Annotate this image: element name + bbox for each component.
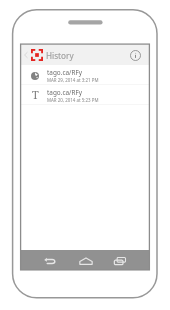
staticText: MAR 29, 2014 at 3:21 PM [47, 77, 99, 83]
button[interactable]: Back [44, 257, 55, 265]
button[interactable]: Info [126, 46, 144, 64]
staticText: MAR 20, 2014 at 5:23 PM [47, 97, 99, 103]
button[interactable]: Recent apps [114, 257, 126, 265]
other: Navigate up [24, 51, 28, 59]
staticText: History [46, 50, 74, 61]
button[interactable]: T [21, 85, 149, 105]
staticText: T [32, 87, 39, 101]
button[interactable]: Home [79, 257, 93, 265]
button[interactable]: tago.ca/RFy [21, 65, 149, 85]
staticText: tago.ca/RFy [47, 68, 82, 77]
staticText: tago.ca/RFy [47, 88, 82, 97]
button[interactable]: App logo [31, 49, 43, 61]
